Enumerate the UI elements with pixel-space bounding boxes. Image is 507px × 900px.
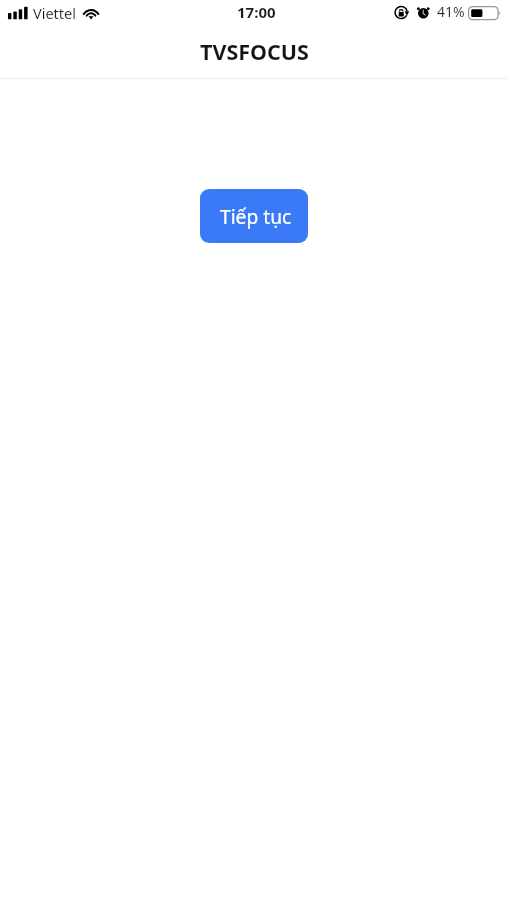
other: Alarm set bbox=[416, 5, 431, 21]
staticText: Viettel bbox=[33, 3, 77, 23]
staticText: 17:00 bbox=[237, 2, 276, 22]
button[interactable]: Tiếp tục bbox=[200, 189, 308, 243]
other: Battery 41 percent bbox=[467, 5, 503, 21]
other: Wi-Fi bbox=[82, 4, 101, 20]
staticText: Tiếp tục bbox=[220, 203, 292, 229]
other: Rotation lock bbox=[394, 5, 410, 21]
other: Cellular signal bbox=[7, 6, 29, 21]
staticText: 41% bbox=[437, 2, 465, 21]
staticText: TVSFOCUS bbox=[200, 37, 309, 66]
